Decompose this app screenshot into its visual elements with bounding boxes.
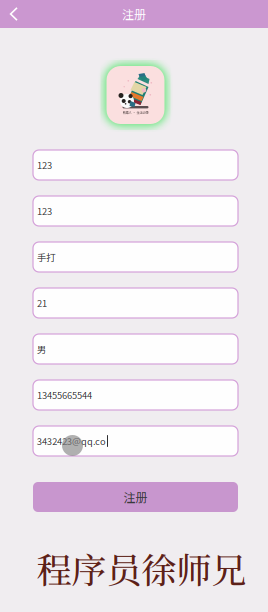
staticText: 熊猫人 · 生活记录: [122, 110, 148, 115]
staticText: 123: [37, 204, 52, 218]
staticText: 手打: [37, 250, 55, 264]
button[interactable]: 123: [33, 150, 238, 180]
staticText: 123: [37, 158, 52, 172]
button[interactable]: 男: [33, 334, 238, 364]
staticText: 3432423@qq.co: [37, 434, 106, 448]
button[interactable]: 123: [33, 196, 238, 226]
button[interactable]: 手打: [33, 242, 238, 272]
button[interactable]: Back: [0, 0, 28, 28]
button[interactable]: 13455665544: [33, 380, 238, 410]
staticText: 男: [37, 342, 46, 356]
staticText: 程序员徐师兄: [36, 543, 246, 593]
button[interactable]: 21: [33, 288, 238, 318]
staticText: 注册: [123, 488, 147, 506]
button[interactable]: 3432423@qq.co: [33, 426, 238, 456]
button[interactable]: 注册: [33, 482, 238, 512]
staticText: 13455665544: [37, 388, 92, 402]
staticText: 21: [37, 296, 47, 310]
staticText: 注册: [122, 5, 146, 23]
